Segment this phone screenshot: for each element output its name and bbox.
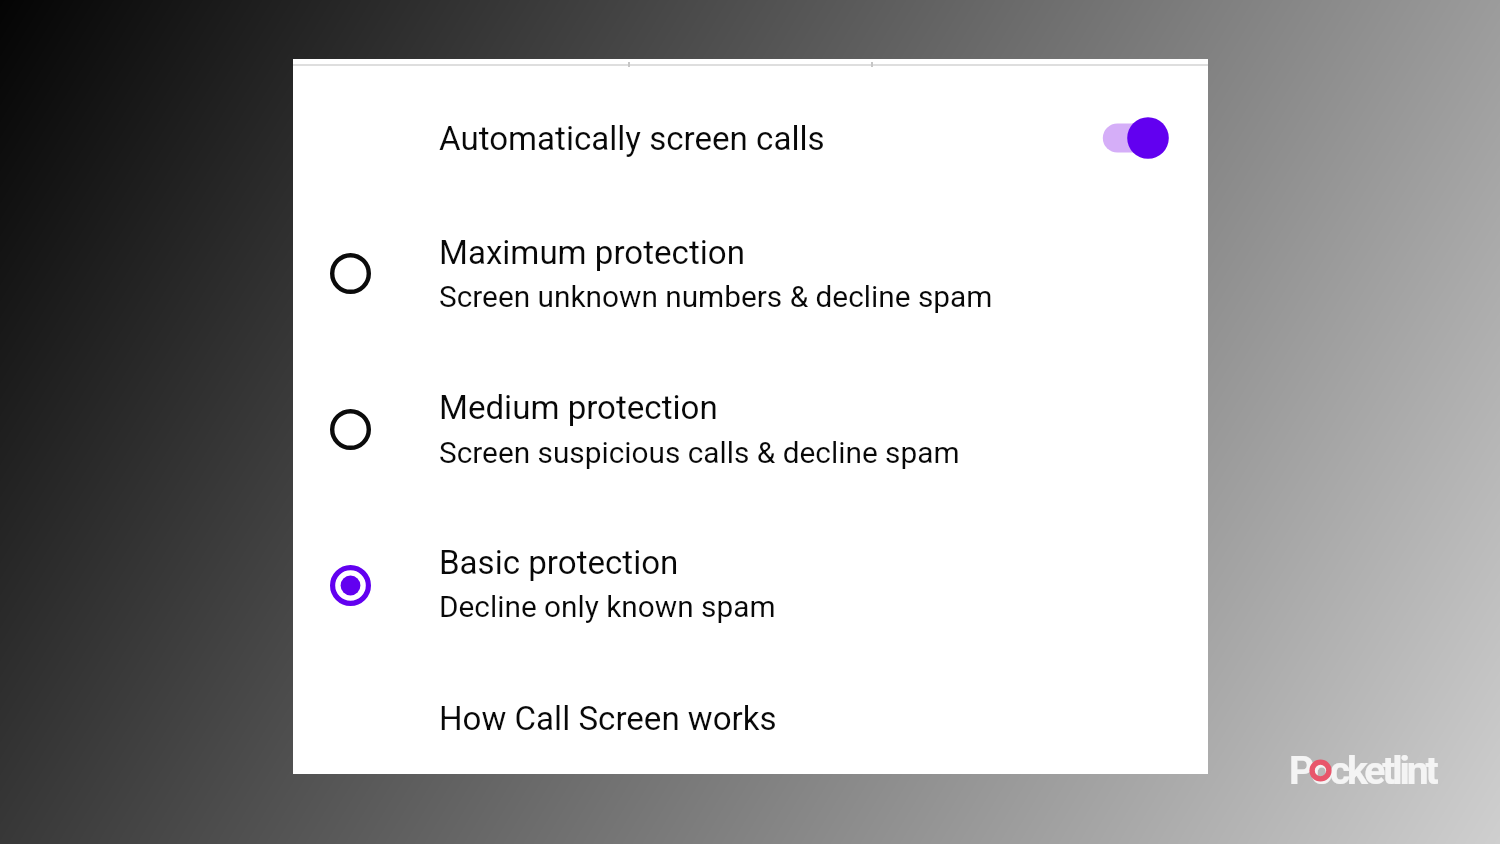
button[interactable]: How Call Screen works (293, 676, 1208, 764)
staticText: Pocketlint (1289, 748, 1436, 794)
staticText: Automatically screen calls (439, 119, 825, 158)
staticText: Decline only known spam (439, 589, 776, 624)
staticText: How Call Screen works (439, 699, 777, 738)
button[interactable]: Maximum protection (293, 206, 1208, 331)
button[interactable]: Basic protection (293, 516, 1208, 641)
staticText: Screen unknown numbers & decline spam (439, 279, 993, 314)
staticText: Medium protection (439, 388, 718, 427)
staticText: Basic protection (439, 543, 679, 582)
staticText: Screen suspicious calls & decline spam (439, 435, 960, 470)
staticText: Maximum protection (439, 233, 745, 272)
button[interactable]: Medium protection (293, 361, 1208, 486)
button[interactable]: Automatically screen calls (293, 87, 1208, 183)
button[interactable]: Automatically screen calls, on (1094, 112, 1184, 164)
